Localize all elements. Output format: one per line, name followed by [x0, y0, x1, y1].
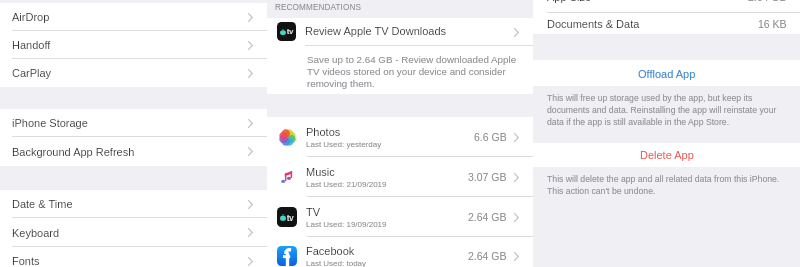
staticText: Documents & Data	[547, 18, 640, 30]
staticText: Fonts	[12, 255, 40, 267]
staticText: Handoff	[12, 39, 51, 51]
staticText: Last Used: yesterday	[306, 140, 382, 149]
button[interactable]: CarPlay	[0, 59, 267, 87]
button[interactable]: Documents & Data	[533, 13, 800, 34]
button[interactable]: tv	[267, 18, 533, 46]
staticText: Facebook	[306, 245, 355, 257]
button[interactable]: Facebook	[267, 237, 533, 267]
button[interactable]: Background App Refresh	[0, 137, 267, 166]
staticText: App Size	[547, 0, 592, 3]
staticText: tv	[287, 27, 294, 36]
staticText: Music	[306, 166, 335, 178]
button[interactable]: tv	[267, 197, 533, 237]
staticText: Last Used: today	[306, 259, 367, 267]
staticText: Keyboard	[12, 227, 60, 239]
button[interactable]: Date & Time	[0, 190, 267, 218]
button[interactable]: AirDrop	[0, 3, 267, 31]
button[interactable]: Keyboard	[0, 218, 267, 247]
staticText: Date & Time	[12, 198, 73, 210]
button[interactable]: Delete App	[533, 143, 800, 167]
button[interactable]: Photos	[267, 117, 533, 157]
staticText: Save up to 2.64 GB - Review downloaded A…	[307, 54, 517, 89]
staticText: RECOMMENDATIONS	[275, 3, 361, 12]
staticText: 16 KB	[758, 18, 787, 30]
staticText: Photos	[306, 126, 341, 138]
staticText: Background App Refresh	[12, 146, 135, 158]
staticText: iPhone Storage	[12, 117, 88, 129]
staticText: tv	[287, 213, 294, 222]
staticText: 6.6 GB	[474, 131, 507, 143]
staticText: TV	[306, 206, 321, 218]
staticText: Last Used: 21/09/2019	[306, 180, 387, 189]
staticText: Delete App	[640, 149, 694, 161]
staticText: 3.07 GB	[468, 171, 507, 183]
staticText: 2.64 GB	[468, 250, 507, 262]
button[interactable]: Music	[267, 157, 533, 197]
button[interactable]: Offload App	[533, 60, 800, 86]
staticText: Offload App	[638, 68, 696, 80]
staticText: Last Used: 19/09/2019	[306, 220, 387, 229]
button[interactable]: Handoff	[0, 31, 267, 59]
staticText: This will free up storage used by the ap…	[547, 93, 777, 126]
staticText: This will delete the app and all related…	[547, 174, 780, 195]
staticText: AirDrop	[12, 11, 50, 23]
staticText: CarPlay	[12, 67, 52, 79]
button[interactable]: iPhone Storage	[0, 109, 267, 137]
staticText: 2.64 GB	[748, 0, 787, 3]
staticText: Review Apple TV Downloads	[305, 25, 447, 37]
staticText: 2.64 GB	[468, 211, 507, 223]
button[interactable]: Fonts	[0, 247, 267, 267]
